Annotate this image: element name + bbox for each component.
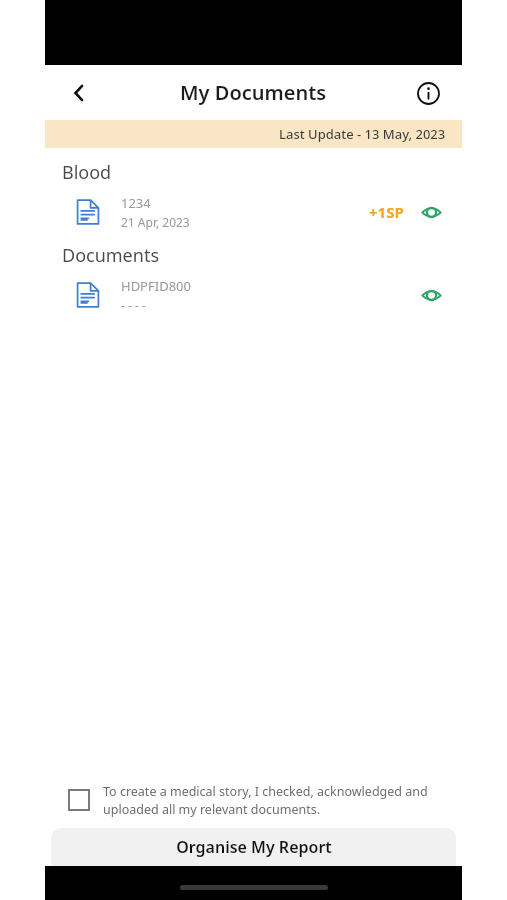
staticText: +1SP — [369, 202, 404, 222]
button[interactable]: View document — [416, 197, 446, 227]
staticText: - - - - — [121, 297, 146, 313]
button[interactable]: Information — [406, 71, 450, 115]
button[interactable]: HDPFID800 — [45, 270, 462, 320]
staticText: Organise My Report — [176, 836, 332, 858]
staticText: HDPFID800 — [121, 277, 191, 295]
staticText: My Documents — [180, 79, 327, 106]
button[interactable]: Back — [57, 71, 101, 115]
staticText: Blood — [62, 160, 112, 185]
staticText: Last Update - 13 May, 2023 — [279, 125, 446, 143]
button[interactable]: 1234 — [45, 187, 462, 237]
button[interactable]: To create a medical story, I checked, ac… — [45, 774, 462, 828]
staticText: 1234 — [121, 194, 151, 212]
staticText: Documents — [62, 243, 160, 268]
button[interactable]: Organise My Report — [51, 828, 456, 866]
button[interactable]: View document — [416, 280, 446, 310]
staticText: To create a medical story, I checked, ac… — [103, 783, 442, 818]
staticText: 21 Apr, 2023 — [121, 214, 190, 230]
